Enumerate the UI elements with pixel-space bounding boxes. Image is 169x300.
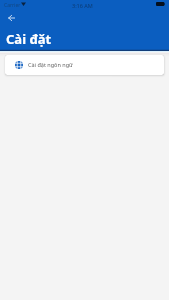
staticText: Cài đặt (6, 30, 52, 48)
staticText: Carrier (4, 2, 21, 9)
button[interactable]: Cài đặt ngôn ngữ (5, 55, 164, 75)
staticText: 3:16 AM (72, 2, 93, 9)
button[interactable]: Back (2, 10, 21, 25)
staticText: Cài đặt ngôn ngữ (28, 61, 73, 68)
